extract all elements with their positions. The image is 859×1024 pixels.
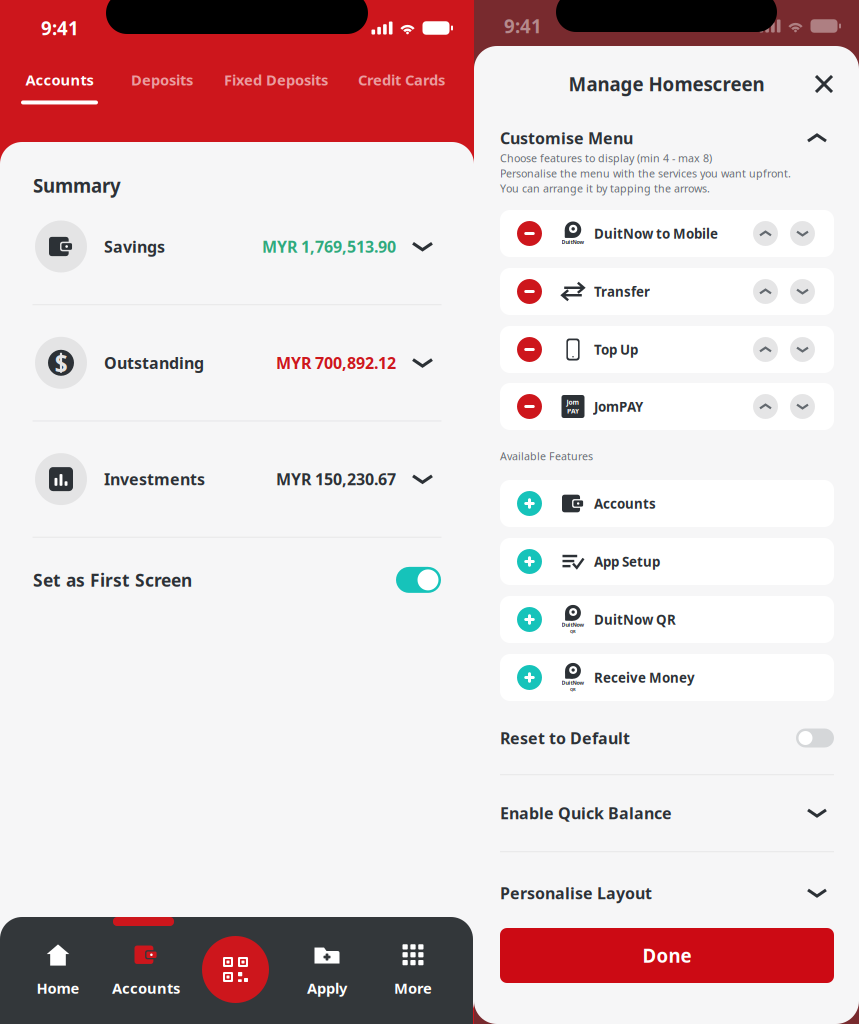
staticText: DuitNow QR xyxy=(594,611,676,628)
button[interactable]: Move up xyxy=(753,279,778,304)
staticText: More xyxy=(394,978,432,998)
staticText: Summary xyxy=(33,173,121,198)
staticText: MYR 700,892.12 xyxy=(276,352,396,373)
staticText: S xyxy=(54,347,67,379)
staticText: Enable Quick Balance xyxy=(500,802,672,824)
staticText: Savings xyxy=(104,236,165,257)
button[interactable]: Move up xyxy=(753,337,778,362)
staticText: Accounts xyxy=(112,978,180,998)
button[interactable]: Apply xyxy=(283,942,371,1000)
staticText: App Setup xyxy=(594,553,660,570)
button[interactable]: Move up xyxy=(753,221,778,246)
button[interactable]: Move down xyxy=(790,394,815,419)
button[interactable]: DuitNow xyxy=(500,210,834,257)
staticText: Accounts xyxy=(25,70,93,89)
staticText: Personalise the menu with the services y… xyxy=(500,166,791,180)
staticText: Choose features to display (min 4 - max … xyxy=(500,151,712,165)
button[interactable]: Jom xyxy=(500,383,834,430)
button[interactable]: DuitNow xyxy=(500,654,834,701)
button[interactable]: Investments xyxy=(0,422,474,537)
staticText: Available Features xyxy=(500,449,593,463)
button[interactable]: Savings xyxy=(0,189,474,304)
button[interactable]: Move up xyxy=(753,394,778,419)
button[interactable]: App Setup xyxy=(500,538,834,585)
staticText: JomPAY xyxy=(594,398,643,415)
staticText: Home xyxy=(36,978,79,998)
staticText: 9:41 xyxy=(41,16,79,40)
staticText: You can arrange it by tapping the arrows… xyxy=(500,181,710,195)
staticText: Jom xyxy=(566,398,579,406)
button[interactable]: Close xyxy=(804,64,844,104)
staticText: QR xyxy=(570,687,576,692)
button[interactable]: Home xyxy=(14,942,102,1000)
staticText: Fixed Deposits xyxy=(224,70,328,89)
button[interactable]: Deposits xyxy=(131,70,193,104)
button[interactable]: S xyxy=(0,305,474,420)
staticText: Personalise Layout xyxy=(500,882,652,904)
staticText: DuitNow xyxy=(561,238,584,246)
button[interactable]: Accounts xyxy=(21,70,98,104)
staticText: Apply xyxy=(307,978,347,998)
staticText: Outstanding xyxy=(104,352,204,373)
button[interactable]: DuitNow xyxy=(500,596,834,643)
staticText: Reset to Default xyxy=(500,727,630,749)
staticText: MYR 150,230.67 xyxy=(276,468,396,490)
button[interactable]: Transfer xyxy=(500,268,834,315)
button[interactable]: Move down xyxy=(790,221,815,246)
button[interactable]: Top Up xyxy=(500,326,834,373)
staticText: Accounts xyxy=(594,495,656,512)
staticText: Manage Homescreen xyxy=(568,72,764,96)
staticText: MYR 1,769,513.90 xyxy=(262,236,396,257)
button[interactable]: Enable Quick Balance xyxy=(500,798,826,828)
staticText: Investments xyxy=(104,468,205,490)
button[interactable]: Move down xyxy=(790,279,815,304)
button[interactable]: Credit Cards xyxy=(358,70,445,104)
button[interactable]: Accounts xyxy=(102,942,190,1000)
button[interactable]: Fixed Deposits xyxy=(224,70,328,104)
staticText: QR xyxy=(570,629,576,634)
staticText: DuitNow to Mobile xyxy=(594,225,718,242)
staticText: Top Up xyxy=(594,341,638,358)
button[interactable]: More xyxy=(369,942,457,1000)
staticText: Done xyxy=(642,943,691,968)
staticText: PAY xyxy=(567,406,579,415)
staticText: Receive Money xyxy=(594,669,695,686)
staticText: Customise Menu xyxy=(500,127,633,149)
button[interactable]: Set as First Screen xyxy=(0,538,474,622)
button[interactable]: Done xyxy=(500,928,834,983)
button[interactable]: Accounts xyxy=(500,480,834,527)
staticText: DuitNow xyxy=(561,679,584,686)
staticText: 9:41 xyxy=(504,14,542,38)
staticText: Set as First Screen xyxy=(33,568,192,591)
staticText: Deposits xyxy=(131,70,193,89)
button[interactable]: Reset to Default xyxy=(500,720,834,756)
staticText: DuitNow xyxy=(561,621,584,628)
staticText: Transfer xyxy=(594,283,650,300)
button[interactable]: Personalise Layout xyxy=(500,878,826,908)
button[interactable]: Customise Menu xyxy=(500,125,826,151)
button[interactable]: Move down xyxy=(790,337,815,362)
staticText: Credit Cards xyxy=(358,70,445,89)
